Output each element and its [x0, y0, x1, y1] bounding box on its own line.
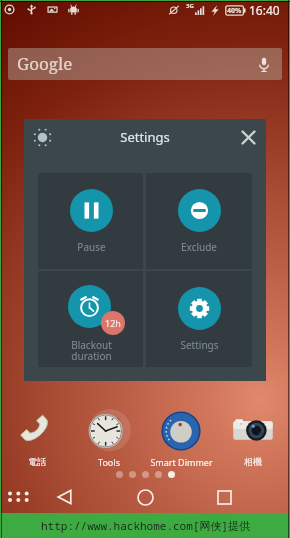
button[interactable]: 相機: [218, 410, 288, 467]
staticText: Google: [17, 52, 73, 75]
button[interactable]: Pause: [38, 173, 143, 269]
button[interactable]: 電話: [2, 410, 72, 467]
staticText: Settings: [180, 338, 219, 352]
button[interactable]: Settings: [146, 271, 252, 367]
button[interactable]: Back: [50, 483, 78, 511]
button[interactable]: Tools: [74, 410, 144, 468]
staticText: 40%: [227, 6, 242, 16]
button[interactable]: Google: [8, 48, 282, 80]
staticText: Smart Dimmer: [150, 456, 213, 468]
button[interactable]: Smart Dimmer: [146, 410, 216, 468]
staticText: Settings: [60, 128, 230, 146]
button[interactable]: Home: [131, 483, 159, 511]
button[interactable]: All apps: [3, 483, 31, 511]
staticText: 電話: [28, 456, 46, 467]
button[interactable]: Exclude: [146, 173, 252, 269]
staticText: 相機: [244, 456, 262, 467]
staticText: 3G: [186, 2, 194, 10]
button[interactable]: Brightness: [24, 119, 60, 155]
staticText: Exclude: [181, 240, 217, 254]
button[interactable]: Close: [230, 119, 266, 155]
staticText: 16:40: [249, 2, 280, 18]
staticText: http://www.hackhome.com[网侠]提供: [41, 518, 250, 533]
button[interactable]: 12h: [38, 271, 143, 367]
staticText: Tools: [98, 456, 120, 468]
staticText: 12h: [105, 317, 121, 329]
staticText: Blackout duration: [71, 338, 112, 363]
button[interactable]: Recent apps: [210, 483, 238, 511]
staticText: Pause: [77, 240, 106, 254]
